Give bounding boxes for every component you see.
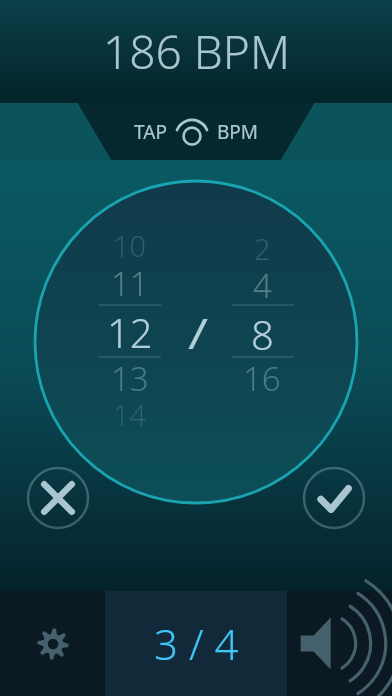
staticText: TAP xyxy=(134,119,167,145)
staticText: 11 xyxy=(111,261,149,306)
button[interactable]: 3 / 4 xyxy=(105,591,287,696)
button[interactable] xyxy=(228,210,300,460)
staticText: 13 xyxy=(111,356,149,401)
staticText: 14 xyxy=(113,395,147,434)
staticText: 4 xyxy=(253,263,272,308)
staticText: 2 xyxy=(254,229,271,268)
staticText: 10 xyxy=(113,226,147,265)
staticText: 16 xyxy=(243,356,281,401)
button[interactable]: Confirm xyxy=(302,466,366,530)
staticText: 8 xyxy=(251,307,274,359)
button[interactable]: 186 BPM xyxy=(0,0,392,103)
button[interactable]: Settings xyxy=(0,591,105,696)
staticText: 186 BPM xyxy=(103,20,290,83)
staticText: 12 xyxy=(107,305,153,357)
button[interactable]: Volume xyxy=(287,591,392,696)
staticText: BPM xyxy=(217,119,259,145)
button[interactable]: Cancel xyxy=(26,466,90,530)
staticText: 3 / 4 xyxy=(154,615,239,672)
button[interactable]: TAP xyxy=(0,103,392,160)
button[interactable] xyxy=(95,210,167,460)
